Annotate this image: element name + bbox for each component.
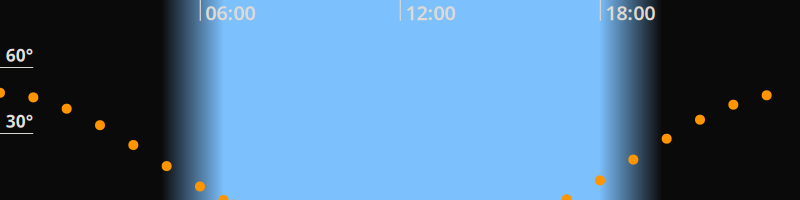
staticText: 06:00 [205, 0, 255, 26]
staticText: 30° [6, 109, 33, 132]
staticText: 18:00 [605, 0, 655, 26]
staticText: 12:00 [405, 0, 455, 26]
staticText: 60° [6, 43, 33, 66]
